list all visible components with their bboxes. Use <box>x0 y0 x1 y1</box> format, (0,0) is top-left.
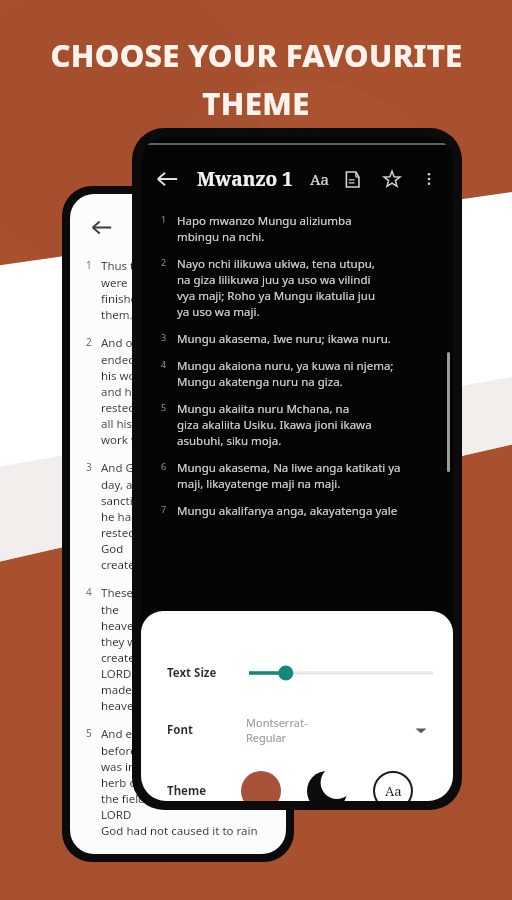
staticText: These are the generations of the heavens… <box>101 585 274 713</box>
button[interactable]: Back <box>84 210 118 244</box>
staticText: Mungu akalifanya anga, akayatenga yale <box>177 503 398 519</box>
staticText: Aa <box>385 782 402 800</box>
button[interactable]: Light theme <box>373 771 413 801</box>
staticText: Mungu akaiita nuru Mchana, na giza akali… <box>177 401 372 449</box>
staticText: Mungu akasema, Na liwe anga katikati ya … <box>177 460 401 492</box>
staticText: 6 <box>161 460 167 472</box>
button[interactable]: More options <box>415 165 443 193</box>
button[interactable]: Text Size <box>167 655 433 691</box>
staticText: 3 <box>161 331 167 343</box>
staticText: Aa <box>310 169 330 189</box>
staticText: 3 <box>86 460 92 474</box>
staticText: Mwanzo 1 <box>197 166 293 192</box>
button[interactable]: Back <box>151 163 183 195</box>
staticText: Font <box>167 722 193 738</box>
staticText: Theme <box>167 783 207 799</box>
staticText: CHOOSE YOUR FAVOURITE <box>50 34 463 76</box>
staticText: Montserrat- Regular <box>246 715 308 745</box>
staticText: Text Size <box>167 665 217 681</box>
staticText: THEME <box>202 82 310 124</box>
staticText: 2 <box>161 256 167 268</box>
staticText: And every plant of the field before it w… <box>101 726 274 841</box>
staticText: And God blessed the seventh day, and san… <box>101 460 274 572</box>
staticText: 5 <box>86 726 92 740</box>
staticText: 2 <box>86 335 92 349</box>
button[interactable]: Sepia theme <box>241 771 281 801</box>
staticText: 4 <box>86 585 92 599</box>
staticText: 5 <box>161 401 167 413</box>
staticText: Mungu akasema, Iwe nuru; ikawa nuru. <box>177 331 391 347</box>
staticText: Thus the heavens and the earth were fini… <box>101 258 274 322</box>
staticText: 7 <box>161 503 167 515</box>
button[interactable]: Font <box>167 709 433 751</box>
staticText: 1 <box>161 213 167 225</box>
button[interactable]: Dark theme <box>307 771 347 801</box>
button[interactable]: Text appearance <box>305 164 335 194</box>
staticText: Mungu akaiona nuru, ya kuwa ni njema; Mu… <box>177 358 394 390</box>
staticText: 1 <box>86 258 92 272</box>
staticText: Hapo mwanzo Mungu aliziumba mbingu na nc… <box>177 213 352 245</box>
button[interactable]: Notes <box>337 164 367 194</box>
staticText: Nayo nchi ilikuwa ukiwa, tena utupu, na … <box>177 256 376 320</box>
button[interactable]: Bookmark <box>377 164 407 194</box>
staticText: 4 <box>161 358 167 370</box>
staticText: And on the seventh day God ended his wor… <box>101 335 274 447</box>
